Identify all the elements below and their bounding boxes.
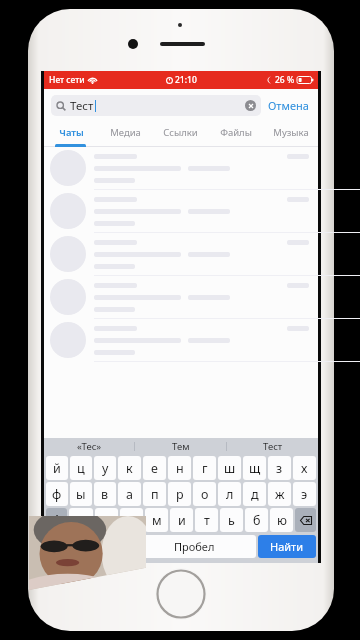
staticText: е [151,460,158,477]
staticText: Файлы [220,126,252,139]
button[interactable]: г [193,456,216,480]
button[interactable]: Backspace [295,508,316,532]
button[interactable]: Пробел [132,535,256,558]
button[interactable]: х [293,456,316,480]
button[interactable]: э [293,482,316,506]
button[interactable]: д [243,482,266,506]
staticText: 26 % [275,74,295,86]
button[interactable]: м [145,508,168,532]
button[interactable]: у [94,456,116,480]
button[interactable]: в [94,482,116,506]
staticText: Найти [270,539,304,554]
staticText: щ [249,460,261,477]
staticText: п [151,486,159,503]
button[interactable]: б [245,508,268,532]
staticText: ц [77,460,85,477]
button[interactable]: п [143,482,166,506]
staticText: Пробел [174,539,215,554]
button[interactable]: щ [243,456,266,480]
staticText: м [152,512,162,529]
staticText: Медиа [110,126,141,139]
button[interactable]: ч [95,508,118,532]
button[interactable]: л [218,482,241,506]
staticText: с [128,512,135,529]
staticText: к [126,460,133,477]
staticText: ш [224,460,236,477]
staticText: ь [228,512,235,529]
staticText: ю [277,512,287,529]
button[interactable]: Numbers and emoji [46,535,102,558]
staticText: ф [52,486,62,503]
staticText: Тем [172,440,190,453]
button[interactable]: ф [46,482,68,506]
staticText: х [301,460,308,477]
button[interactable]: н [168,456,191,480]
staticText: а [126,486,133,503]
staticText: ж [275,486,285,503]
button[interactable]: Ссылки [153,122,208,143]
button[interactable]: р [168,482,191,506]
button[interactable]: з [268,456,291,480]
staticText: з [276,460,283,477]
staticText: й [53,460,61,477]
staticText: э [301,486,308,503]
staticText: т [204,512,210,529]
button[interactable]: Home [155,568,207,620]
button[interactable]: Медиа [98,122,153,143]
staticText: р [176,486,184,503]
staticText: Тест [70,98,94,114]
button[interactable]: ж [268,482,291,506]
button[interactable]: й [46,456,68,480]
button[interactable]: с [120,508,143,532]
button[interactable]: Тест [51,95,261,116]
button[interactable]: е [143,456,166,480]
button[interactable]: и [170,508,193,532]
button[interactable]: Dictation [104,535,130,558]
staticText: Тест [263,440,283,453]
staticText: Нет сети [49,74,85,86]
staticText: л [226,486,234,503]
button[interactable]: Тем [135,438,226,455]
button[interactable]: а [118,482,141,506]
button[interactable]: Музыка [263,122,318,143]
button[interactable]: я [69,508,93,532]
staticText: я [77,512,85,529]
staticText: ч [103,512,111,529]
staticText: у [102,460,109,477]
button[interactable]: Найти [258,535,316,558]
button[interactable]: ц [70,456,92,480]
staticText: Музыка [273,126,309,139]
staticText: и [178,512,186,529]
staticText: «Тес» [77,440,102,453]
staticText: н [176,460,184,477]
button[interactable]: ш [218,456,241,480]
staticText: 21:10 [175,74,197,86]
button[interactable]: ю [270,508,293,532]
staticText: Отмена [268,98,309,113]
staticText: г [202,460,208,477]
button[interactable]: Отмена [266,94,311,117]
button[interactable]: о [193,482,216,506]
staticText: ы [76,486,86,503]
button[interactable]: ь [220,508,243,532]
button[interactable]: Clear text [245,100,256,111]
button[interactable]: Тест [227,438,318,455]
button[interactable]: к [118,456,141,480]
staticText: Чаты [59,126,84,139]
button[interactable]: Shift [46,508,67,532]
button[interactable]: т [195,508,218,532]
staticText: д [251,486,259,503]
staticText: б [253,512,261,529]
button[interactable]: ы [70,482,92,506]
button[interactable]: «Тес» [44,438,134,455]
staticText: в [101,486,109,503]
staticText: о [201,486,209,503]
button[interactable]: Чаты [44,122,98,143]
button[interactable]: Файлы [208,122,263,143]
staticText: Ссылки [163,126,198,139]
